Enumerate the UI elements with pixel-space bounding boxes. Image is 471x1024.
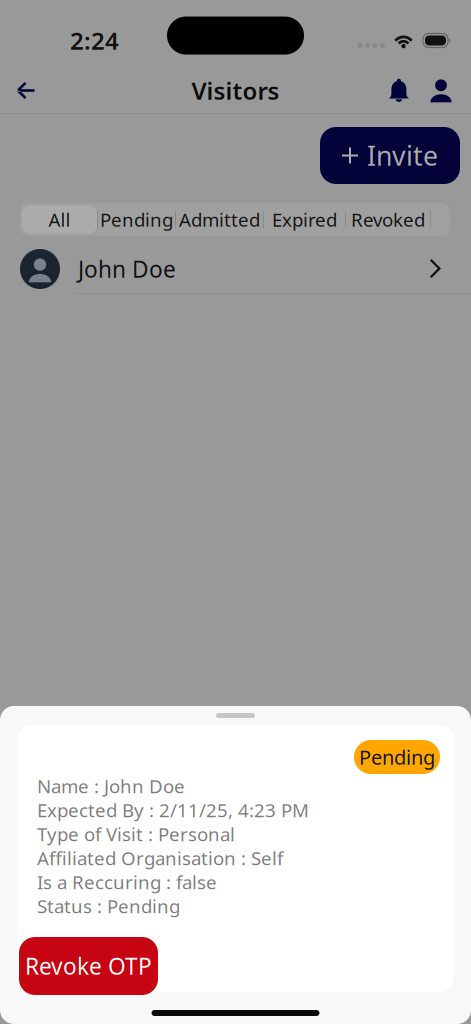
button[interactable]: John Doe (0, 245, 471, 294)
staticText: 2:24 (70, 25, 119, 56)
staticText: Pending (359, 744, 435, 770)
staticText: Expected By : 2/11/25, 4:23 PM (37, 798, 309, 822)
staticText: Type of Visit : Personal (37, 822, 235, 846)
staticText: Pending (100, 207, 173, 232)
staticText: Status : Pending (37, 894, 180, 918)
staticText: Revoked (351, 207, 425, 232)
button[interactable]: Back (4, 68, 48, 112)
staticText: Is a Reccuring : false (37, 870, 217, 894)
staticText: Invite (367, 138, 438, 173)
button[interactable]: Notifications (377, 68, 421, 112)
staticText: Expired (272, 207, 337, 232)
button[interactable]: Revoke OTP (19, 937, 158, 995)
button[interactable]: Expired (264, 205, 345, 233)
staticText: Revoke OTP (25, 951, 152, 981)
button[interactable]: Admitted (176, 205, 263, 233)
button[interactable]: Invite (320, 127, 460, 184)
staticText: Admitted (179, 207, 260, 232)
button[interactable]: Revoked (346, 205, 430, 233)
staticText: All (48, 207, 70, 232)
button[interactable]: All (22, 205, 97, 233)
staticText: Visitors (191, 75, 279, 106)
staticText: John Doe (78, 254, 176, 284)
button[interactable]: Pending (98, 205, 175, 233)
staticText: Affiliated Organisation : Self (37, 846, 283, 870)
staticText: Name : John Doe (37, 774, 185, 798)
button[interactable]: Profile (421, 68, 461, 112)
